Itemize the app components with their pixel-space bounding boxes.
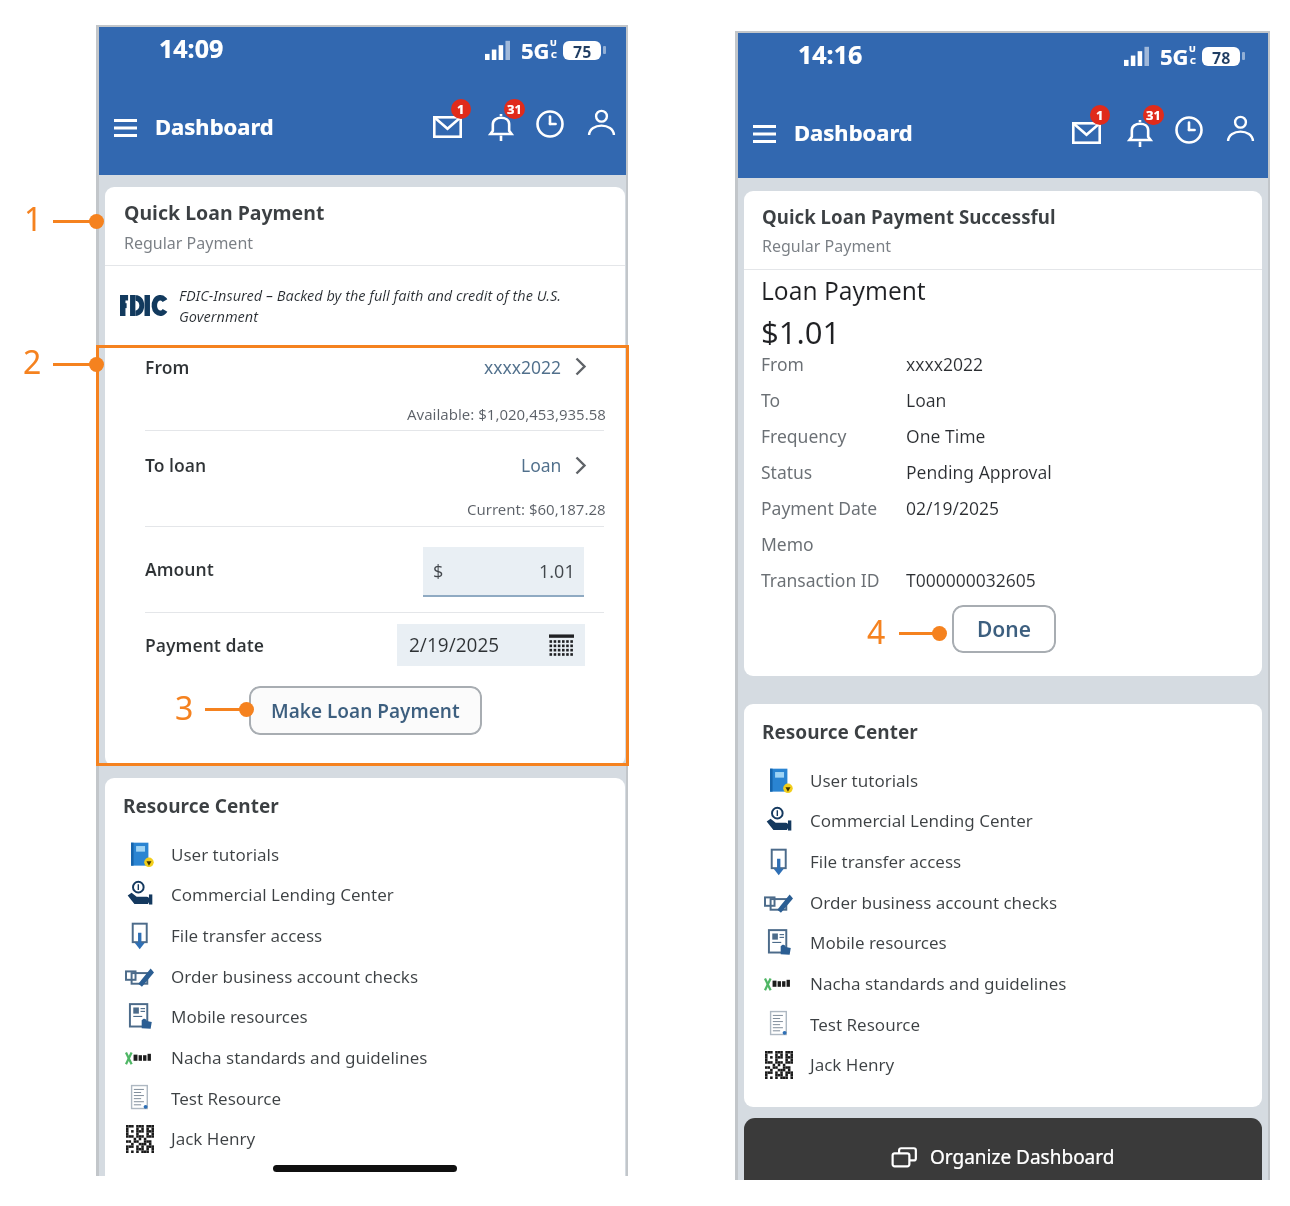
staticText: Payment date bbox=[145, 633, 264, 657]
staticText: File transfer access bbox=[171, 924, 323, 947]
button[interactable]: Menu bbox=[103, 106, 147, 150]
staticText: Commercial Lending Center bbox=[810, 809, 1033, 832]
staticText: 14:09 bbox=[159, 31, 224, 65]
staticText: $ bbox=[433, 559, 444, 584]
staticText: Order business account checks bbox=[171, 965, 419, 988]
staticText: Nacha standards and guidelines bbox=[171, 1046, 428, 1069]
staticText: 4 bbox=[867, 610, 886, 654]
staticText: Test Resource bbox=[810, 1013, 921, 1036]
staticText: Mobile resources bbox=[171, 1005, 308, 1028]
staticText: Organize Dashboard bbox=[930, 1144, 1115, 1170]
staticText: T000000032605 bbox=[906, 568, 1036, 592]
staticText: Resource Center bbox=[123, 793, 279, 817]
button[interactable]: User tutorials bbox=[124, 834, 625, 875]
button[interactable]: File transfer access bbox=[763, 841, 1262, 882]
staticText: Frequency bbox=[761, 424, 847, 448]
staticText: Order business account checks bbox=[810, 891, 1058, 914]
staticText: 02/19/2025 bbox=[906, 496, 1000, 520]
staticText: Regular Payment bbox=[124, 232, 254, 254]
button[interactable]: Profile bbox=[578, 99, 624, 145]
staticText: Amount bbox=[145, 557, 214, 581]
staticText: One Time bbox=[906, 424, 986, 448]
staticText: U bbox=[1189, 42, 1196, 54]
staticText: 3 bbox=[175, 686, 194, 730]
staticText: 1 bbox=[457, 100, 465, 118]
button[interactable]: From bbox=[145, 345, 586, 388]
button[interactable]: Mobile resources bbox=[124, 996, 625, 1037]
staticText: Dashboard bbox=[794, 117, 913, 147]
staticText: Pending Approval bbox=[906, 460, 1052, 484]
staticText: 14:16 bbox=[798, 37, 863, 71]
button[interactable]: Nacha standards and guidelines bbox=[763, 963, 1262, 1004]
staticText: C bbox=[551, 48, 557, 60]
button[interactable]: Make Loan Payment bbox=[249, 686, 482, 735]
button[interactable]: Messages bbox=[421, 97, 473, 149]
staticText: Current: $60,187.28 bbox=[467, 499, 606, 519]
staticText: Dashboard bbox=[155, 111, 274, 141]
button[interactable]: Jack Henry bbox=[124, 1118, 625, 1159]
button[interactable]: Messages bbox=[1060, 103, 1112, 155]
staticText: Loan bbox=[906, 388, 947, 412]
button[interactable]: Commercial Lending Center bbox=[124, 874, 625, 915]
staticText: Commercial Lending Center bbox=[171, 883, 394, 906]
button[interactable]: History bbox=[527, 101, 573, 147]
staticText: 31 bbox=[507, 100, 522, 118]
staticText: From bbox=[145, 355, 190, 379]
staticText: 2/19/2025 bbox=[409, 632, 500, 658]
staticText: To bbox=[761, 388, 781, 412]
staticText: Regular Payment bbox=[762, 235, 892, 257]
staticText: 2 bbox=[23, 340, 42, 384]
staticText: Loan bbox=[521, 453, 562, 477]
button[interactable]: User tutorials bbox=[763, 760, 1262, 801]
staticText: Make Loan Payment bbox=[271, 698, 460, 724]
staticText: 75 bbox=[573, 41, 592, 60]
button[interactable]: File transfer access bbox=[124, 915, 625, 956]
button[interactable]: $ bbox=[423, 547, 584, 595]
staticText: 31 bbox=[1146, 106, 1161, 124]
staticText: 5G bbox=[521, 35, 550, 65]
button[interactable]: Commercial Lending Center bbox=[763, 800, 1262, 841]
button[interactable]: Order business account checks bbox=[763, 882, 1262, 923]
button[interactable]: Test Resource bbox=[124, 1078, 625, 1119]
button[interactable]: Mobile resources bbox=[763, 922, 1262, 963]
staticText: Memo bbox=[761, 532, 814, 556]
staticText: File transfer access bbox=[810, 850, 962, 873]
staticText: Loan Payment bbox=[761, 274, 926, 307]
staticText: 78 bbox=[1212, 47, 1231, 66]
staticText: Resource Center bbox=[762, 719, 918, 743]
button[interactable]: Notifications bbox=[1114, 103, 1166, 155]
staticText: Nacha standards and guidelines bbox=[810, 972, 1067, 995]
button[interactable]: Jack Henry bbox=[763, 1044, 1262, 1085]
button[interactable]: Test Resource bbox=[763, 1004, 1262, 1045]
button[interactable]: History bbox=[1166, 107, 1212, 153]
staticText: xxxx2022 bbox=[484, 355, 562, 379]
button[interactable]: Nacha standards and guidelines bbox=[124, 1037, 625, 1078]
button[interactable]: Done bbox=[952, 605, 1056, 653]
staticText: C bbox=[1190, 54, 1196, 66]
staticText: Status bbox=[761, 460, 813, 484]
button[interactable]: 2/19/2025 bbox=[397, 624, 585, 666]
staticText: Transaction ID bbox=[761, 568, 880, 592]
button[interactable]: Profile bbox=[1217, 105, 1263, 151]
staticText: Quick Loan Payment Successful bbox=[762, 204, 1056, 229]
button[interactable]: Order business account checks bbox=[124, 956, 625, 997]
staticText: 1 bbox=[24, 197, 43, 241]
staticText: User tutorials bbox=[810, 769, 919, 792]
button[interactable]: Notifications bbox=[475, 97, 527, 149]
staticText: 1 bbox=[1096, 106, 1104, 124]
staticText: Payment Date bbox=[761, 496, 878, 520]
staticText: 5G bbox=[1160, 41, 1189, 71]
staticText: U bbox=[550, 36, 557, 48]
staticText: 1.01 bbox=[539, 559, 575, 584]
button[interactable]: Organize Dashboard bbox=[744, 1118, 1262, 1180]
staticText: Mobile resources bbox=[810, 931, 947, 954]
staticText: Available: $1,020,453,935.58 bbox=[407, 404, 606, 424]
staticText: Jack Henry bbox=[171, 1127, 256, 1150]
staticText: FDIC-Insured – Backed by the full faith … bbox=[179, 285, 574, 327]
staticText: From bbox=[761, 352, 804, 376]
staticText: Test Resource bbox=[171, 1087, 282, 1110]
button[interactable]: To loan bbox=[145, 444, 586, 486]
button[interactable]: Menu bbox=[742, 112, 786, 156]
staticText: Quick Loan Payment bbox=[124, 199, 325, 226]
staticText: xxxx2022 bbox=[906, 352, 984, 376]
